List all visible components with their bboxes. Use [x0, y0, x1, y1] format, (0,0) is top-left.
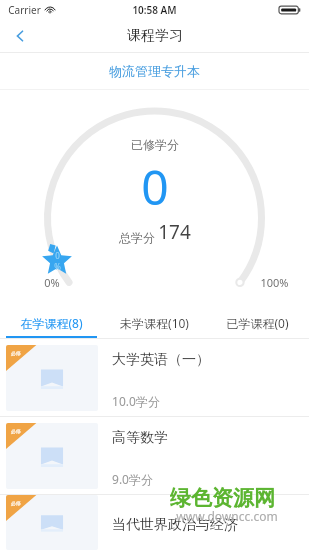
staticText: 大学英语（一）	[112, 351, 210, 369]
staticText: 0	[141, 154, 169, 219]
staticText: 绿色资源网	[170, 485, 275, 511]
staticText: 必修	[11, 500, 21, 506]
staticText: 9.0学分	[112, 471, 153, 487]
staticText: 物流管理专升本	[109, 63, 200, 79]
button[interactable]: 必修	[0, 417, 309, 494]
staticText: 0%	[44, 275, 60, 290]
staticText: 必修	[11, 350, 21, 356]
staticText: 10.0学分	[112, 393, 160, 409]
staticText: 必修	[11, 428, 21, 434]
staticText: 总学分	[119, 230, 155, 245]
button[interactable]: 必修	[0, 495, 309, 550]
staticText: www.downcc.com	[176, 508, 278, 524]
button[interactable]: 物流管理专升本	[0, 53, 309, 89]
button[interactable]: 在学课程(8)	[0, 307, 103, 338]
staticText: 高等数学	[112, 429, 168, 447]
button[interactable]: 未学课程(10)	[103, 307, 206, 338]
staticText: 已修学分	[131, 137, 179, 152]
staticText: 在学课程(8)	[20, 315, 83, 331]
staticText: 10:58 AM	[132, 3, 177, 17]
staticText: 174	[158, 219, 191, 245]
button[interactable]: 必修	[0, 339, 309, 416]
button[interactable]: 已学课程(0)	[206, 307, 309, 338]
button[interactable]: Back	[0, 20, 40, 52]
staticText: 已学课程(0)	[226, 315, 289, 331]
staticText: 未学课程(10)	[120, 315, 189, 331]
staticText: 100%	[260, 275, 289, 290]
staticText: 课程学习	[127, 27, 183, 45]
staticText: %	[54, 261, 61, 272]
staticText: Carrier	[8, 3, 41, 17]
staticText: 当代世界政治与经济	[112, 516, 238, 534]
staticText: 0	[55, 250, 60, 261]
